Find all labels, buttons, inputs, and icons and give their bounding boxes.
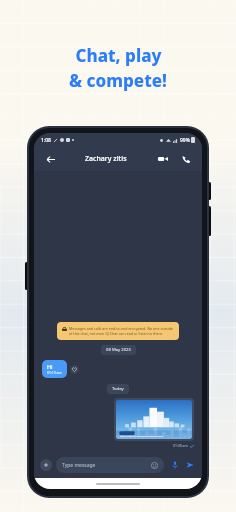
button[interactable]: Hi <box>42 360 67 378</box>
button[interactable]: Video call <box>156 152 170 166</box>
staticText: 01:08 am <box>173 443 188 448</box>
staticText: Messages and calls are end-to-end encryp… <box>69 326 174 336</box>
staticText: 08 May 2025 <box>106 347 131 353</box>
button[interactable]: Type message <box>56 457 164 473</box>
staticText: & compete! <box>69 69 167 92</box>
staticText: Type message <box>62 462 96 469</box>
staticText: Zachary zitis <box>85 154 127 164</box>
button[interactable]: Voice call <box>179 152 193 166</box>
button[interactable]: Today <box>107 384 129 394</box>
staticText: 99% <box>180 137 190 144</box>
button[interactable]: Back <box>43 152 57 166</box>
staticText: 1:08 <box>41 137 51 144</box>
staticText: Hi <box>47 363 53 370</box>
button[interactable]: Messages and calls are end-to-end encryp… <box>57 322 179 340</box>
button[interactable]: Send <box>184 459 196 471</box>
staticText: Chat, play <box>75 44 162 67</box>
button[interactable] <box>116 400 192 439</box>
button[interactable]: Reaction <box>70 365 79 374</box>
staticText: 01:10 am <box>47 370 62 375</box>
staticText: Today <box>112 386 124 392</box>
button[interactable]: Voice message <box>169 459 181 471</box>
button[interactable]: 08 May 2025 <box>101 345 136 355</box>
button[interactable]: Attach <box>40 459 52 471</box>
